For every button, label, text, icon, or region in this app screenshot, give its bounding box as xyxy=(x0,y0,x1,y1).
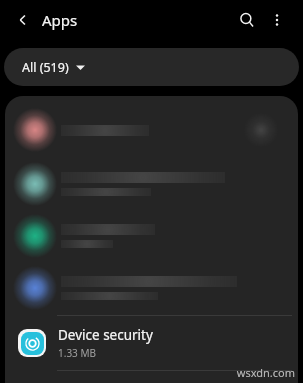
button[interactable] xyxy=(5,158,298,210)
button[interactable] xyxy=(5,104,298,156)
staticText: 1.33 MB xyxy=(58,346,97,360)
staticText: Device security xyxy=(58,326,153,344)
button[interactable]: More options xyxy=(262,5,292,35)
staticText: Apps xyxy=(42,10,78,30)
button[interactable]: All (519) xyxy=(4,48,299,86)
button[interactable]: Back xyxy=(8,5,38,35)
staticText: All (519) xyxy=(22,59,69,76)
button[interactable]: Device security xyxy=(5,316,298,370)
button[interactable] xyxy=(5,262,298,314)
button[interactable] xyxy=(5,210,298,262)
button[interactable]: Search xyxy=(232,5,262,35)
staticText: wsxdn.com xyxy=(236,365,295,378)
